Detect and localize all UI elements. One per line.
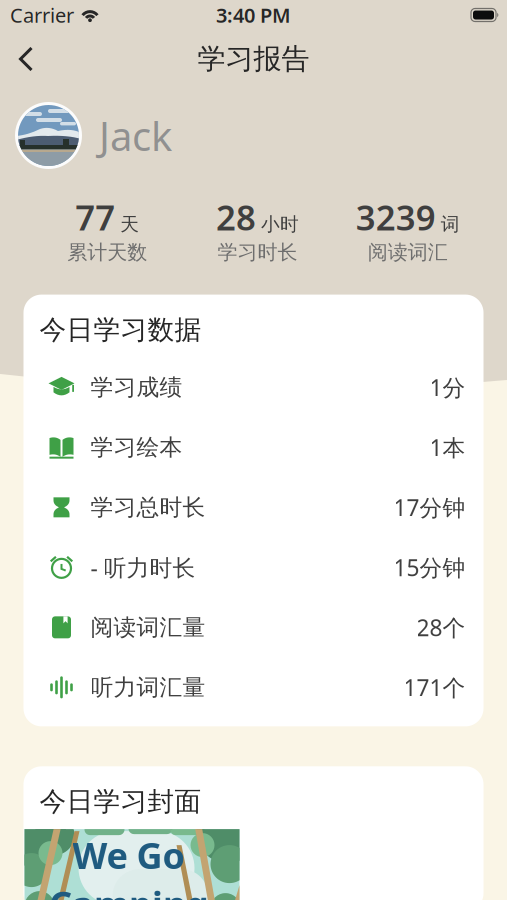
staticText: 1分 bbox=[429, 372, 465, 402]
staticText: Jack bbox=[99, 109, 172, 162]
staticText: 学习报告 bbox=[197, 42, 309, 76]
staticText: 学习绘本 bbox=[90, 433, 182, 461]
staticText: We Go bbox=[72, 831, 185, 879]
staticText: - 听力时长 bbox=[90, 552, 195, 582]
staticText: 阅读词汇量 bbox=[90, 613, 205, 641]
staticText: 天 bbox=[120, 213, 139, 236]
staticText: 今日学习封面 bbox=[39, 785, 201, 818]
staticText: 171个 bbox=[403, 672, 465, 702]
staticText: 28个 bbox=[416, 612, 465, 642]
staticText: 17分钟 bbox=[393, 492, 465, 522]
staticText: 3:40 PM bbox=[216, 2, 291, 28]
staticText: 今日学习数据 bbox=[39, 314, 201, 346]
staticText: 15分钟 bbox=[393, 552, 465, 582]
staticText: 学习时长 bbox=[217, 240, 297, 265]
staticText: 听力词汇量 bbox=[90, 673, 205, 701]
staticText: Carrier bbox=[10, 2, 74, 28]
staticText: 学习总时长 bbox=[90, 493, 205, 521]
staticText: 学习成绩 bbox=[90, 373, 182, 401]
button[interactable]: Back bbox=[0, 32, 34, 86]
staticText: 小时 bbox=[261, 213, 299, 236]
staticText: 阅读词汇 bbox=[368, 240, 448, 265]
staticText: 词 bbox=[441, 213, 460, 236]
staticText: 累计天数 bbox=[67, 240, 147, 265]
staticText: 28 bbox=[216, 194, 256, 240]
staticText: 1本 bbox=[429, 432, 465, 462]
staticText: Camping bbox=[49, 880, 209, 900]
staticText: 77 bbox=[75, 194, 115, 240]
staticText: 3239 bbox=[356, 194, 436, 240]
